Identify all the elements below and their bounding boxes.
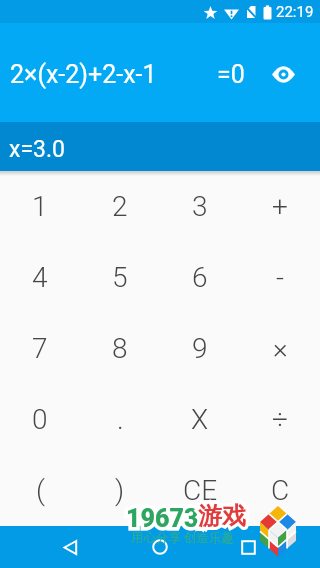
staticText: 8 (112, 332, 128, 365)
button[interactable]: 4 (0, 242, 80, 313)
staticText: 游戏 (198, 501, 246, 531)
button[interactable] (241, 540, 256, 555)
staticText: 用心分享 创造乐趣 (131, 530, 235, 546)
button[interactable]: 8 (80, 313, 160, 384)
staticText: ÷ (272, 403, 288, 436)
staticText: 6 (192, 261, 208, 294)
button[interactable]: 7 (0, 313, 80, 384)
button[interactable]: 9 (160, 313, 240, 384)
button[interactable]: 0 (0, 384, 80, 455)
button[interactable]: + (240, 171, 320, 242)
button[interactable] (63, 540, 78, 555)
staticText: - (276, 261, 285, 294)
staticText: X (191, 403, 209, 436)
button[interactable]: × (240, 313, 320, 384)
button[interactable]: 6 (160, 242, 240, 313)
staticText: 2×(x-2)+2-x-1 (10, 60, 157, 89)
staticText: ) (115, 474, 125, 507)
staticText: 19673 (126, 504, 199, 533)
button[interactable] (152, 539, 168, 555)
button[interactable]: X (160, 384, 240, 455)
button[interactable]: 2 (80, 171, 160, 242)
staticText: x=3.0 (9, 136, 65, 163)
staticText: 游戏 (198, 501, 246, 531)
staticText: 7 (32, 332, 48, 365)
staticText: × (273, 332, 288, 365)
button[interactable]: 3 (160, 171, 240, 242)
staticText: 5 (112, 261, 128, 294)
button[interactable]: ) (80, 455, 160, 526)
button[interactable]: ( (0, 455, 80, 526)
button[interactable] (272, 67, 295, 82)
staticText: 2 (112, 190, 128, 223)
staticText: C (271, 474, 290, 507)
button[interactable]: 1 (0, 171, 80, 242)
button[interactable]: ÷ (240, 384, 320, 455)
staticText: 19673 (126, 504, 199, 533)
staticText: 4 (32, 261, 48, 294)
staticText: 0 (32, 403, 48, 436)
staticText: 3 (192, 190, 208, 223)
staticText: 9 (192, 332, 208, 365)
staticText: 1 (32, 190, 48, 223)
staticText: CE (183, 474, 218, 507)
staticText: + (272, 190, 288, 223)
button[interactable]: 5 (80, 242, 160, 313)
staticText: . (117, 403, 124, 436)
button[interactable]: . (80, 384, 160, 455)
staticText: ( (36, 474, 45, 507)
button[interactable]: C (240, 455, 320, 526)
staticText: =0 (217, 60, 245, 89)
staticText: 22:19 (276, 3, 314, 21)
button[interactable]: CE (160, 455, 240, 526)
button[interactable]: - (240, 242, 320, 313)
